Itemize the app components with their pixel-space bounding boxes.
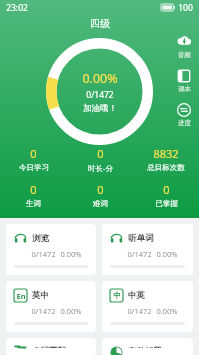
staticText: 听单词 bbox=[128, 233, 154, 244]
staticText: 中英 bbox=[128, 290, 145, 301]
staticText: 0 bbox=[163, 182, 170, 197]
staticText: 加油哦！ bbox=[83, 103, 117, 114]
staticText: 浏览 bbox=[32, 233, 49, 244]
staticText: 0 bbox=[30, 182, 37, 197]
button[interactable]: 课本 bbox=[172, 67, 196, 94]
button[interactable]: 0 bbox=[0, 146, 67, 172]
staticText: 0 bbox=[30, 146, 37, 161]
staticText: 四级 bbox=[90, 17, 110, 30]
button[interactable]: 8832 bbox=[133, 146, 199, 172]
staticText: 0.00% bbox=[60, 306, 82, 316]
button[interactable]: 多词匹配 bbox=[6, 338, 96, 355]
staticText: 0/1472 bbox=[86, 89, 114, 101]
staticText: 生词 bbox=[26, 199, 41, 208]
staticText: 8832 bbox=[153, 146, 179, 161]
staticText: 0 bbox=[97, 182, 104, 197]
button[interactable]: 浏览 bbox=[6, 224, 96, 275]
staticText: 完整解释 bbox=[128, 346, 162, 348]
button[interactable]: 进度 bbox=[172, 101, 196, 128]
staticText: 23:02 bbox=[6, 2, 28, 14]
button[interactable]: 音频 bbox=[172, 33, 196, 60]
button[interactable]: En bbox=[6, 281, 96, 332]
staticText: 总目标次数 bbox=[147, 163, 185, 172]
staticText: 难词 bbox=[93, 199, 108, 208]
staticText: 0/1472 bbox=[31, 306, 56, 316]
staticText: 0/1472 bbox=[31, 249, 56, 259]
staticText: 多词匹配 bbox=[32, 346, 66, 348]
button[interactable]: 0 bbox=[133, 182, 199, 208]
staticText: 课本 bbox=[178, 85, 191, 93]
staticText: 英中 bbox=[32, 290, 49, 301]
staticText: 0.00% bbox=[60, 249, 82, 259]
staticText: 音频 bbox=[178, 51, 191, 59]
staticText: 0.00% bbox=[156, 306, 178, 316]
button[interactable]: 0 bbox=[67, 182, 133, 208]
staticText: 已掌握 bbox=[155, 199, 178, 208]
staticText: En bbox=[16, 291, 26, 301]
staticText: 100 bbox=[178, 2, 193, 14]
staticText: 时长-分 bbox=[88, 163, 113, 173]
staticText: 今日学习 bbox=[19, 163, 49, 172]
button[interactable]: 听单词 bbox=[102, 224, 193, 275]
staticText: 0.00% bbox=[82, 70, 118, 87]
button[interactable]: 中 bbox=[102, 281, 193, 332]
staticText: 0.00% bbox=[156, 249, 178, 259]
staticText: 进度 bbox=[178, 119, 191, 127]
button[interactable]: 0 bbox=[67, 146, 133, 173]
button[interactable]: 0 bbox=[0, 182, 67, 208]
staticText: 0/1472 bbox=[127, 306, 152, 316]
staticText: 中 bbox=[113, 291, 121, 300]
button[interactable]: 完整解释 bbox=[102, 338, 193, 355]
staticText: 0 bbox=[97, 146, 104, 161]
staticText: 0/1472 bbox=[127, 249, 152, 259]
